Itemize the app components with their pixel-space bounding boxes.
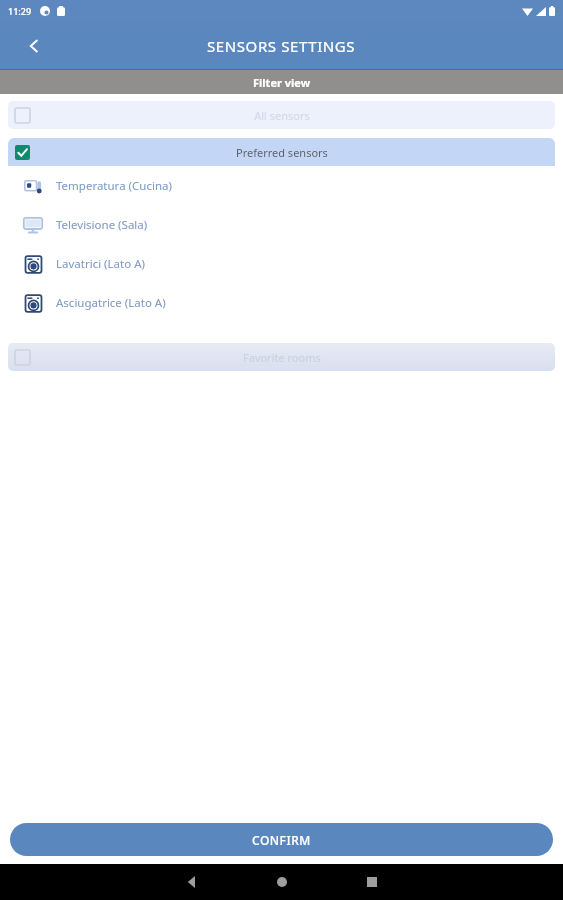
staticText: Lavatrici (Lato A) (56, 256, 145, 272)
staticText: Temperatura (Cucina) (56, 178, 172, 194)
staticText: Televisione (Sala) (56, 217, 148, 233)
button[interactable]: Back (12, 24, 56, 68)
button[interactable]: Favorite rooms (8, 343, 555, 371)
staticText: CONFIRM (252, 832, 311, 848)
staticText: All sensors (254, 108, 310, 123)
button[interactable]: Back (164, 864, 220, 900)
staticText: 11:29 (8, 5, 32, 17)
button[interactable]: Temperatura (Cucina) (8, 166, 555, 205)
staticText: Preferred sensors (236, 145, 328, 160)
button[interactable]: Recent apps (344, 864, 400, 900)
button[interactable]: Filter view (0, 70, 563, 94)
staticText: Asciugatrice (Lato A) (56, 295, 166, 311)
staticText: SENSORS SETTINGS (207, 36, 356, 56)
staticText: Filter view (253, 75, 311, 90)
button[interactable]: Home (254, 864, 310, 900)
button[interactable]: Televisione (Sala) (8, 205, 555, 244)
button[interactable]: Preferred sensors (8, 138, 555, 166)
button[interactable]: All sensors (8, 101, 555, 129)
button[interactable]: Asciugatrice (Lato A) (8, 283, 555, 322)
staticText: Favorite rooms (243, 350, 321, 365)
button[interactable]: CONFIRM (10, 823, 553, 856)
button[interactable]: Lavatrici (Lato A) (8, 244, 555, 283)
